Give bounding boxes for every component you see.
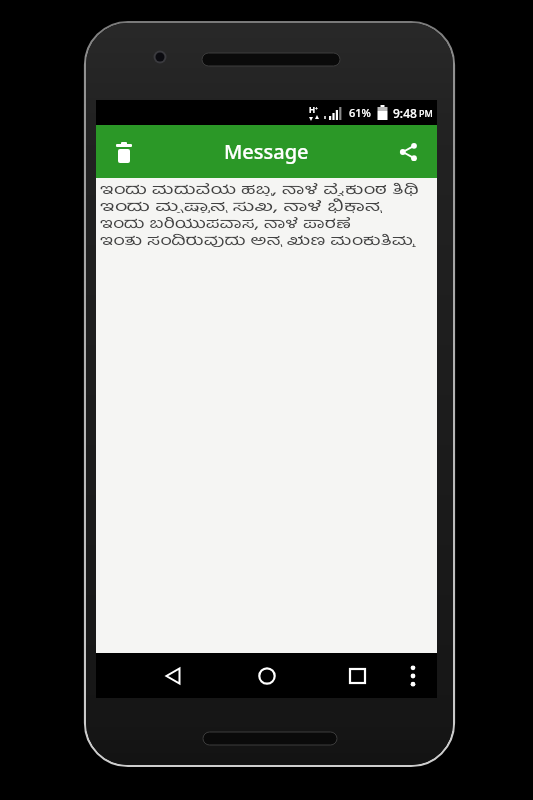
staticText: ಇಂದು ಮದುವೆಯ ಹಬ್ಬ, ನಾಳೆ ವೈಕುಂಠ ತಿಥಿ xyxy=(100,179,419,196)
staticText: H⁺ xyxy=(309,104,318,115)
button[interactable] xyxy=(343,662,371,690)
staticText: ಇಂದು ಮೃಷ್ಟಾನ್ನ ಸುಖ, ನಾಳೆ ಭಿಕ್ಷಾನ್ನ xyxy=(100,196,382,213)
staticText: PM xyxy=(419,107,433,119)
button[interactable] xyxy=(159,662,187,690)
button[interactable] xyxy=(253,662,281,690)
button[interactable] xyxy=(112,140,136,164)
staticText: ಇಂತು ಸಂದಿರುವುದು ಅನ್ನ ಋಣ ಮಂಕುತಿಮ್ಮ xyxy=(100,230,416,247)
staticText: 61% xyxy=(349,105,371,120)
staticText: ಇಂದು ಬರಿಯುಪವಾಸ, ನಾಳೆ ಪಾರಣೆ xyxy=(100,213,352,230)
button[interactable] xyxy=(396,140,420,164)
staticText: Message xyxy=(224,138,309,165)
button[interactable] xyxy=(403,666,423,686)
staticText: 9:48 xyxy=(393,105,417,121)
